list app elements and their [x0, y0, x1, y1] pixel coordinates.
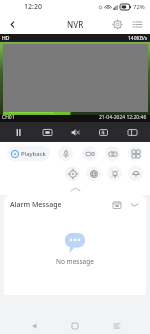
- button[interactable]: Light: [107, 166, 122, 181]
- button[interactable]: Recents: [109, 318, 125, 334]
- button[interactable]: Live view: [0, 34, 150, 122]
- staticText: 140KB/s: [128, 35, 148, 42]
- button[interactable]: Pick date: [111, 199, 123, 211]
- button[interactable]: Playback: [7, 146, 50, 161]
- staticText: NVR: [67, 19, 84, 30]
- button[interactable]: Talk: [58, 146, 73, 161]
- button[interactable]: Split view: [122, 122, 142, 142]
- button[interactable]: Snapshot: [37, 122, 57, 142]
- staticText: 72%: [133, 3, 145, 11]
- button[interactable]: Network: [86, 166, 101, 181]
- staticText: 12:20: [24, 2, 42, 12]
- button[interactable]: Snapshot: [105, 146, 120, 161]
- staticText: Alarm Message: [10, 200, 62, 210]
- staticText: CH01: [2, 114, 15, 121]
- staticText: Playback: [21, 150, 46, 158]
- button[interactable]: PTZ: [65, 166, 80, 181]
- button[interactable]: Siren: [128, 166, 143, 181]
- staticText: 21-04-2024 12:20:46: [99, 114, 147, 121]
- staticText: No message: [56, 257, 94, 266]
- button[interactable]: Settings: [110, 17, 124, 31]
- button[interactable]: Back: [4, 16, 20, 32]
- button[interactable]: Home: [67, 318, 83, 334]
- button[interactable]: Record: [82, 146, 97, 161]
- button[interactable]: Mute: [65, 122, 85, 142]
- button[interactable]: Back: [26, 318, 42, 334]
- button[interactable]: Expand: [128, 199, 140, 211]
- button[interactable]: Quad view: [93, 122, 113, 142]
- button[interactable]: Layout: [128, 146, 143, 161]
- button[interactable]: Menu: [130, 17, 144, 31]
- button[interactable]: Pause: [8, 122, 28, 142]
- button[interactable]: Collapse: [0, 183, 150, 195]
- staticText: HD: [2, 35, 10, 42]
